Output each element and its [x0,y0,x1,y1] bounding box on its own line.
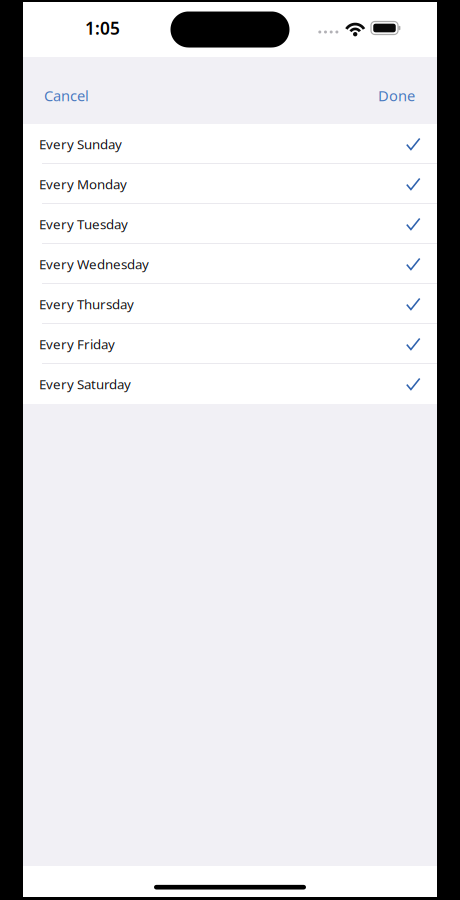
staticText: Done [378,86,415,105]
staticText: Every Tuesday [39,215,128,233]
staticText: Every Thursday [39,295,134,313]
button[interactable]: Every Monday [23,164,437,204]
button[interactable]: Every Saturday [23,364,437,404]
button[interactable]: Every Tuesday [23,204,437,244]
button[interactable]: Every Wednesday [23,244,437,284]
staticText: Every Sunday [39,135,122,153]
staticText: Cancel [44,86,89,105]
staticText: 1:05 [85,17,120,40]
button[interactable]: Every Thursday [23,284,437,324]
staticText: Every Friday [39,335,115,353]
button[interactable]: Cancel [23,57,110,124]
button[interactable]: Done [356,57,437,124]
staticText: Every Saturday [39,375,131,393]
staticText: Every Monday [39,175,127,193]
button[interactable]: Every Friday [23,324,437,364]
staticText: Every Wednesday [39,255,149,273]
button[interactable]: Every Sunday [23,124,437,164]
